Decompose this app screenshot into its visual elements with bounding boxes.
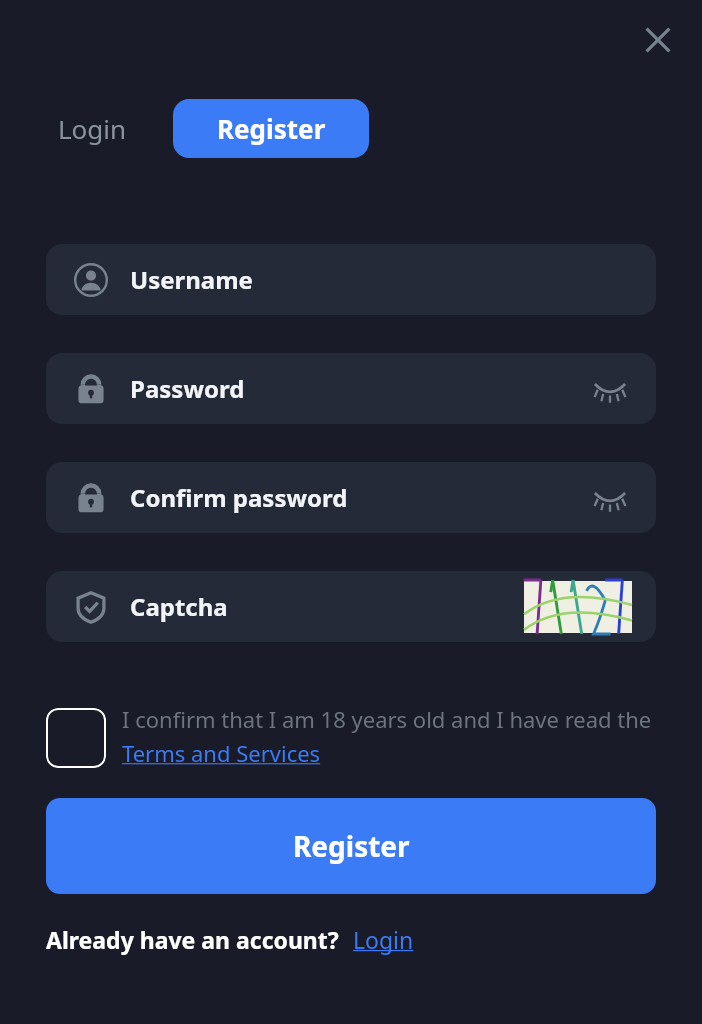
staticText: Register [293, 827, 410, 865]
button[interactable]: Show password [588, 476, 632, 520]
button[interactable]: Close [630, 12, 686, 68]
button[interactable]: Login [46, 101, 139, 156]
button[interactable]: Register [46, 798, 656, 894]
button[interactable]: Username [46, 244, 656, 315]
button[interactable]: Register [173, 99, 369, 158]
button[interactable]: Confirm age checkbox [46, 700, 656, 764]
staticText: Login [58, 111, 127, 146]
button[interactable]: Password [46, 353, 656, 424]
button[interactable]: Confirm age checkbox [46, 708, 106, 768]
staticText: Login [353, 924, 414, 955]
button[interactable]: Captcha [46, 571, 656, 642]
staticText: Password [130, 372, 245, 405]
staticText: Register [217, 111, 326, 146]
staticText: Username [130, 263, 253, 296]
staticText: Confirm password [130, 481, 348, 514]
button[interactable]: Show password [588, 367, 632, 411]
staticText: Already have an account? [46, 924, 339, 955]
button[interactable]: Confirm password [46, 462, 656, 533]
staticText: I confirm that I am 18 years old and I h… [122, 704, 656, 768]
button[interactable]: Login [353, 924, 414, 955]
staticText: Captcha [130, 590, 228, 623]
button[interactable]: Refresh captcha [524, 581, 632, 633]
